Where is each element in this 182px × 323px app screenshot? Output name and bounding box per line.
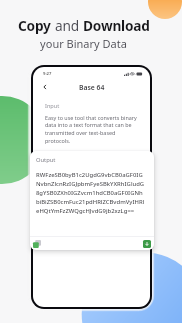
staticText: your Binary Data (0, 36, 167, 51)
staticText: Base 64 (79, 83, 105, 92)
button[interactable]: Download (143, 240, 151, 248)
staticText: Copy (18, 16, 55, 35)
staticText: Output (36, 156, 56, 164)
button[interactable]: Copy (33, 240, 41, 248)
staticText: Download (83, 16, 150, 35)
staticText: Input (45, 102, 60, 110)
button[interactable]: Back (41, 83, 49, 91)
staticText: 9:27 (43, 71, 52, 77)
staticText: Easy to use tool that converts binary da… (45, 114, 140, 145)
staticText: and (55, 16, 83, 35)
staticText: RWFzeSB0byB1c2UgdG9vbCB0aGF0IGNvbnZlcnRz… (36, 171, 146, 215)
